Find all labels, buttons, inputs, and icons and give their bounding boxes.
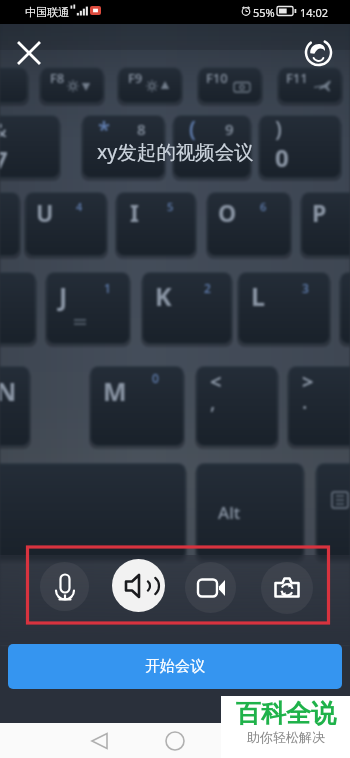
staticText: F8: [50, 69, 65, 87]
staticText: 7: [0, 143, 8, 176]
button[interactable]: 开始会议: [8, 644, 342, 689]
staticText: P: [312, 197, 327, 228]
button[interactable]: Back: [88, 729, 112, 753]
button[interactable]: Speaker: [112, 559, 165, 612]
staticText: ): [275, 113, 282, 143]
staticText: Alt: [218, 501, 241, 524]
button[interactable]: Switch camera: [261, 562, 313, 614]
button[interactable]: Participants: [303, 37, 334, 68]
staticText: N: [0, 374, 17, 408]
staticText: L: [251, 279, 265, 313]
staticText: 4: [76, 199, 83, 214]
staticText: 1: [104, 280, 111, 296]
staticText: 2: [204, 280, 211, 296]
staticText: 8: [137, 119, 146, 139]
button[interactable]: Camera: [185, 562, 236, 613]
staticText: &: [0, 116, 7, 143]
staticText: <: [210, 368, 222, 395]
staticText: 开始会议: [145, 657, 205, 676]
staticText: 55%: [253, 5, 275, 20]
staticText: xy发起的视频会议: [97, 138, 254, 165]
staticText: K: [155, 279, 172, 313]
staticText: *: [98, 113, 111, 143]
staticText: F10: [206, 69, 228, 87]
staticText: F9: [128, 69, 143, 87]
staticText: 14:02: [300, 5, 329, 20]
staticText: 3: [302, 280, 309, 296]
staticText: >: [302, 368, 314, 395]
button[interactable]: Mute microphone: [40, 562, 89, 611]
staticText: 百科全说: [236, 698, 336, 729]
staticText: 6: [260, 199, 267, 214]
staticText: I: [130, 197, 139, 228]
staticText: 0: [275, 141, 289, 174]
staticText: .: [302, 388, 308, 415]
staticText: ,: [210, 388, 216, 415]
button[interactable]: Close: [12, 36, 46, 70]
staticText: U: [36, 197, 54, 228]
button[interactable]: Home: [163, 729, 187, 753]
staticText: O: [218, 197, 237, 228]
staticText: (: [189, 113, 196, 143]
staticText: 助你轻松解决: [247, 729, 325, 745]
staticText: F11: [286, 69, 308, 87]
staticText: 0: [152, 370, 159, 386]
staticText: 5: [167, 199, 174, 214]
staticText: M: [103, 374, 127, 408]
staticText: 9: [225, 119, 234, 139]
staticText: 中国联通: [25, 5, 69, 19]
staticText: J: [59, 279, 68, 313]
